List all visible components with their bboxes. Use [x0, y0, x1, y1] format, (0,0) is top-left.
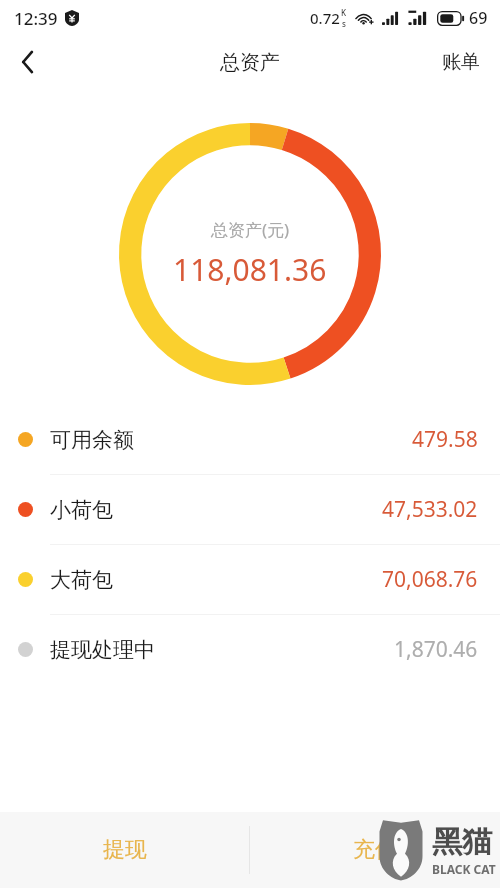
button[interactable]: 提现 [0, 812, 249, 888]
staticText: s [342, 18, 346, 29]
staticText: 1,870.46 [394, 635, 478, 664]
staticText: 47,533.02 [382, 495, 478, 524]
button[interactable]: 提现处理中 [0, 615, 500, 684]
staticText: 黑猫 [432, 823, 492, 861]
button[interactable]: 充值 [250, 812, 500, 888]
button[interactable]: Back [0, 36, 56, 88]
staticText: 账单 [442, 50, 480, 74]
staticText: 总资产(元) [211, 218, 290, 241]
staticText: 提现 [103, 836, 147, 864]
button[interactable]: 大荷包 [0, 545, 500, 614]
staticText: 大荷包 [50, 567, 113, 593]
staticText: 12:39 [14, 7, 58, 30]
staticText: K [341, 7, 347, 18]
staticText: 提现处理中 [50, 637, 155, 663]
staticText: BLACK CAT [432, 861, 496, 877]
staticText: 总资产 [220, 50, 280, 75]
staticText: 0.72 [310, 8, 340, 28]
staticText: 118,081.36 [173, 249, 327, 290]
staticText: 69 [469, 7, 488, 29]
staticText: 可用余额 [50, 427, 134, 453]
button[interactable]: 小荷包 [0, 475, 500, 544]
button[interactable]: 可用余额 [0, 405, 500, 474]
button[interactable]: 账单 [422, 36, 500, 88]
staticText: 479.58 [412, 425, 478, 454]
staticText: 充值 [353, 836, 397, 864]
staticText: 小荷包 [50, 497, 113, 523]
staticText: 70,068.76 [382, 565, 478, 594]
